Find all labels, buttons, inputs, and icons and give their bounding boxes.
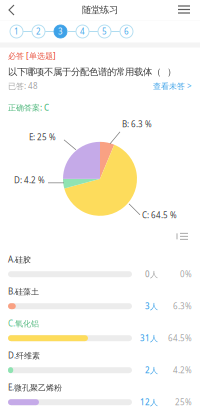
staticText: 2 bbox=[36, 26, 41, 37]
button[interactable]: Menu bbox=[173, 0, 200, 20]
button[interactable]: Sort bbox=[174, 230, 192, 243]
staticText: 4.2% bbox=[173, 365, 192, 375]
button[interactable]: B.硅藻土 bbox=[0, 283, 200, 315]
button[interactable]: 2 bbox=[32, 25, 45, 38]
staticText: 6.3% bbox=[173, 301, 192, 311]
button[interactable]: 6 bbox=[120, 25, 133, 38]
staticText: 31人 bbox=[140, 333, 158, 343]
staticText: 5 bbox=[102, 26, 107, 37]
staticText: D.纤维素 bbox=[8, 350, 40, 361]
button[interactable]: C.氧化铝 bbox=[0, 315, 200, 347]
staticText: 以下哪项不属于分配色谱的常用载体（ ） bbox=[8, 66, 176, 78]
button[interactable]: A.硅胶 bbox=[0, 251, 200, 283]
staticText: 64.5% bbox=[168, 333, 192, 343]
staticText: 0人 bbox=[145, 269, 158, 279]
staticText: 0% bbox=[180, 269, 192, 279]
button[interactable]: 3 bbox=[54, 25, 67, 38]
staticText: 2人 bbox=[145, 365, 158, 375]
staticText: 3人 bbox=[145, 301, 158, 311]
staticText: 12人 bbox=[140, 397, 158, 407]
staticText: C: 64.5 % bbox=[142, 210, 177, 220]
staticText: E.微孔聚乙烯粉 bbox=[8, 382, 62, 393]
staticText: B.硅藻土 bbox=[8, 286, 39, 297]
staticText: 查看未答 > bbox=[153, 81, 192, 91]
button[interactable]: Back bbox=[0, 0, 28, 20]
staticText: 6 bbox=[124, 26, 129, 37]
staticText: 25% bbox=[175, 397, 192, 407]
button[interactable]: 5 bbox=[98, 25, 111, 38]
staticText: B: 6.3 % bbox=[122, 119, 152, 129]
staticText: 正确答案: C bbox=[8, 102, 49, 113]
staticText: 随堂练习 bbox=[82, 4, 118, 16]
staticText: D: 4.2 % bbox=[14, 175, 45, 185]
button[interactable]: 1 bbox=[10, 25, 23, 38]
staticText: E: 25 % bbox=[29, 132, 56, 142]
button[interactable]: 4 bbox=[76, 25, 89, 38]
staticText: A.硅胶 bbox=[8, 254, 31, 265]
staticText: 3 bbox=[58, 26, 63, 37]
staticText: 1 bbox=[14, 26, 19, 37]
staticText: 已答: 48 bbox=[8, 81, 38, 91]
button[interactable]: 查看未答 > bbox=[153, 81, 192, 91]
staticText: C.氧化铝 bbox=[8, 318, 39, 329]
staticText: 必答 [单选题] bbox=[8, 50, 56, 61]
button[interactable]: D.纤维素 bbox=[0, 347, 200, 379]
button[interactable]: E.微孔聚乙烯粉 bbox=[0, 379, 200, 411]
staticText: 4 bbox=[80, 26, 85, 37]
